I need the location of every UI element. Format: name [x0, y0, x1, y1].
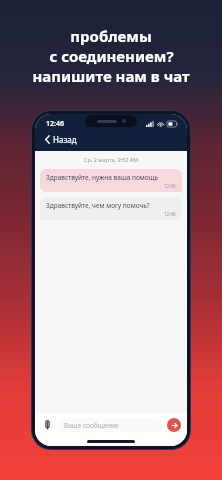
- staticText: 12:46: [164, 183, 176, 189]
- button[interactable]: Attach file: [41, 419, 53, 431]
- staticText: проблемы: [70, 26, 152, 46]
- staticText: с соединением?: [49, 46, 174, 66]
- staticText: Здравствуйте, нужна ваша помощь: [46, 173, 159, 182]
- button[interactable]: Ваше сообщение: [58, 418, 162, 432]
- staticText: 12:46: [46, 119, 64, 129]
- button[interactable]: Здравствуйте, нужна ваша помощь: [40, 169, 182, 192]
- staticText: Назад: [53, 134, 77, 145]
- staticText: Ср, 2 марта, 9:52 AM: [84, 156, 139, 163]
- button[interactable]: Здравствуйте, чем могу помочь?: [40, 197, 182, 220]
- button[interactable]: Send message: [167, 418, 181, 432]
- button[interactable]: Назад: [43, 133, 79, 146]
- staticText: Ваше сообщение: [64, 421, 119, 430]
- staticText: Здравствуйте, чем могу помочь?: [46, 201, 150, 210]
- staticText: напишите нам в чат: [32, 66, 190, 86]
- staticText: 12:46: [164, 211, 176, 217]
